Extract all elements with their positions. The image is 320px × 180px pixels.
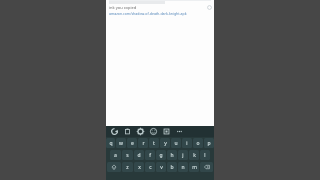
staticText: k (193, 152, 196, 159)
button[interactable]: x (134, 162, 144, 172)
staticText: o (196, 140, 200, 147)
button[interactable]: s (122, 150, 133, 160)
button[interactable]: f (145, 150, 155, 160)
staticText: z (126, 164, 129, 171)
button[interactable]: g (156, 150, 166, 160)
button[interactable]: m (189, 162, 199, 172)
staticText: v (160, 164, 163, 171)
button[interactable]: Settings (137, 128, 144, 135)
button[interactable]: o (193, 138, 203, 148)
button[interactable]: Clipboard (124, 128, 131, 135)
staticText: y (164, 140, 167, 147)
button[interactable]: q (106, 138, 115, 148)
button[interactable]: v (156, 162, 166, 172)
staticText: t (153, 140, 155, 147)
button[interactable]: Shift (107, 162, 121, 172)
staticText: w (119, 140, 123, 147)
button[interactable]: i (182, 138, 192, 148)
button[interactable]: t (149, 138, 159, 148)
button[interactable]: w (116, 138, 126, 148)
staticText: a (114, 152, 117, 159)
staticText: p (207, 140, 211, 147)
staticText: x (138, 164, 141, 171)
button[interactable]: Emoji (150, 128, 157, 135)
staticText: h (170, 152, 174, 159)
button[interactable]: u (171, 138, 181, 148)
button[interactable]: l (200, 150, 210, 160)
staticText: f (149, 152, 151, 159)
staticText: b (170, 164, 174, 171)
button[interactable]: Sticker (163, 128, 170, 135)
button[interactable]: y (160, 138, 170, 148)
button[interactable]: c (145, 162, 155, 172)
button[interactable]: r (138, 138, 148, 148)
button[interactable]: Backspace (200, 162, 213, 172)
staticText: g (159, 152, 163, 159)
button[interactable]: a (110, 150, 121, 160)
staticText: j (182, 152, 184, 159)
staticText: q (109, 140, 113, 147)
button[interactable]: z (122, 162, 133, 172)
button[interactable]: h (167, 150, 177, 160)
button[interactable]: d (134, 150, 144, 160)
staticText: d (137, 152, 141, 159)
button[interactable]: More (176, 128, 183, 135)
staticText: n (181, 164, 185, 171)
button[interactable]: n (178, 162, 188, 172)
button[interactable]: b (167, 162, 177, 172)
button[interactable]: p (204, 138, 214, 148)
button[interactable]: j (178, 150, 188, 160)
button[interactable]: k (189, 150, 199, 160)
staticText: r (142, 140, 145, 147)
staticText: m (192, 164, 197, 171)
staticText: s (126, 152, 129, 159)
staticText: i (186, 140, 188, 147)
staticText: e (131, 140, 134, 147)
staticText: u (174, 140, 178, 147)
staticText: ink you copied (109, 5, 137, 10)
button[interactable]: More options (207, 5, 212, 10)
staticText: amazon.com/shadow-of-death-dark-knight-a… (109, 11, 187, 16)
button[interactable]: e (127, 138, 137, 148)
staticText: c (149, 164, 152, 171)
button[interactable]: Voice input (111, 128, 118, 135)
staticText: l (204, 152, 206, 159)
